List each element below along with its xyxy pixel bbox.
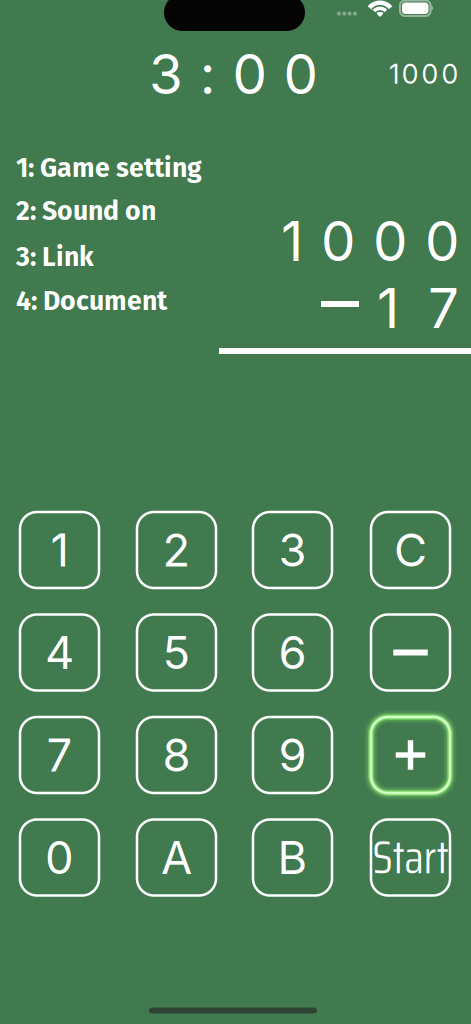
staticText: 1 [50, 523, 68, 577]
button[interactable]: 3: Link [16, 242, 226, 272]
button[interactable]: B [253, 819, 332, 895]
staticText: Start [372, 822, 448, 893]
staticText: 3 [278, 523, 306, 577]
staticText: 7 [428, 275, 459, 341]
button[interactable]: 6 [253, 614, 332, 690]
button[interactable]: A [137, 819, 216, 895]
staticText: 4 [45, 625, 74, 680]
button[interactable]: 2 [137, 512, 216, 588]
staticText: 4: Document [16, 285, 167, 317]
button[interactable]: 9 [253, 717, 332, 793]
button[interactable]: 8 [137, 717, 216, 793]
staticText: 1: Game setting [16, 152, 202, 184]
staticText: 8 [162, 728, 190, 782]
staticText: 3: Link [16, 241, 94, 273]
staticText: 1 [377, 275, 399, 341]
button[interactable]: 4 [20, 614, 99, 690]
staticText: 0 [283, 41, 317, 107]
staticText: 1 [281, 208, 303, 274]
button[interactable]: Add [371, 717, 450, 793]
staticText: 0 [425, 208, 459, 274]
staticText: 0 [233, 41, 267, 107]
staticText: 2: Sound on [16, 195, 156, 227]
button[interactable]: 5 [137, 614, 216, 690]
staticText: C [394, 523, 427, 577]
staticText: 6 [278, 625, 306, 680]
staticText: 0 [373, 208, 407, 274]
staticText: 5 [162, 625, 190, 680]
button[interactable]: Clear [371, 512, 450, 588]
staticText: A [161, 830, 192, 885]
button[interactable]: 1: Game setting [16, 153, 226, 183]
staticText: B [277, 830, 307, 885]
staticText: 0 [45, 830, 74, 885]
staticText: 1000 [389, 58, 458, 90]
button[interactable]: 2: Sound on [16, 196, 226, 226]
button[interactable]: Subtract [371, 614, 450, 690]
staticText: : [200, 41, 216, 107]
staticText: 0 [321, 208, 355, 274]
button[interactable]: Start [371, 819, 450, 895]
button[interactable]: 0 [20, 819, 99, 895]
button[interactable]: 7 [20, 717, 99, 793]
button[interactable]: 1 [20, 512, 99, 588]
staticText: 3 [149, 41, 183, 107]
button[interactable]: 3 [253, 512, 332, 588]
staticText: 2 [162, 523, 190, 577]
staticText: 9 [278, 728, 306, 782]
button[interactable]: 4: Document [16, 286, 226, 316]
staticText: 7 [46, 728, 72, 782]
